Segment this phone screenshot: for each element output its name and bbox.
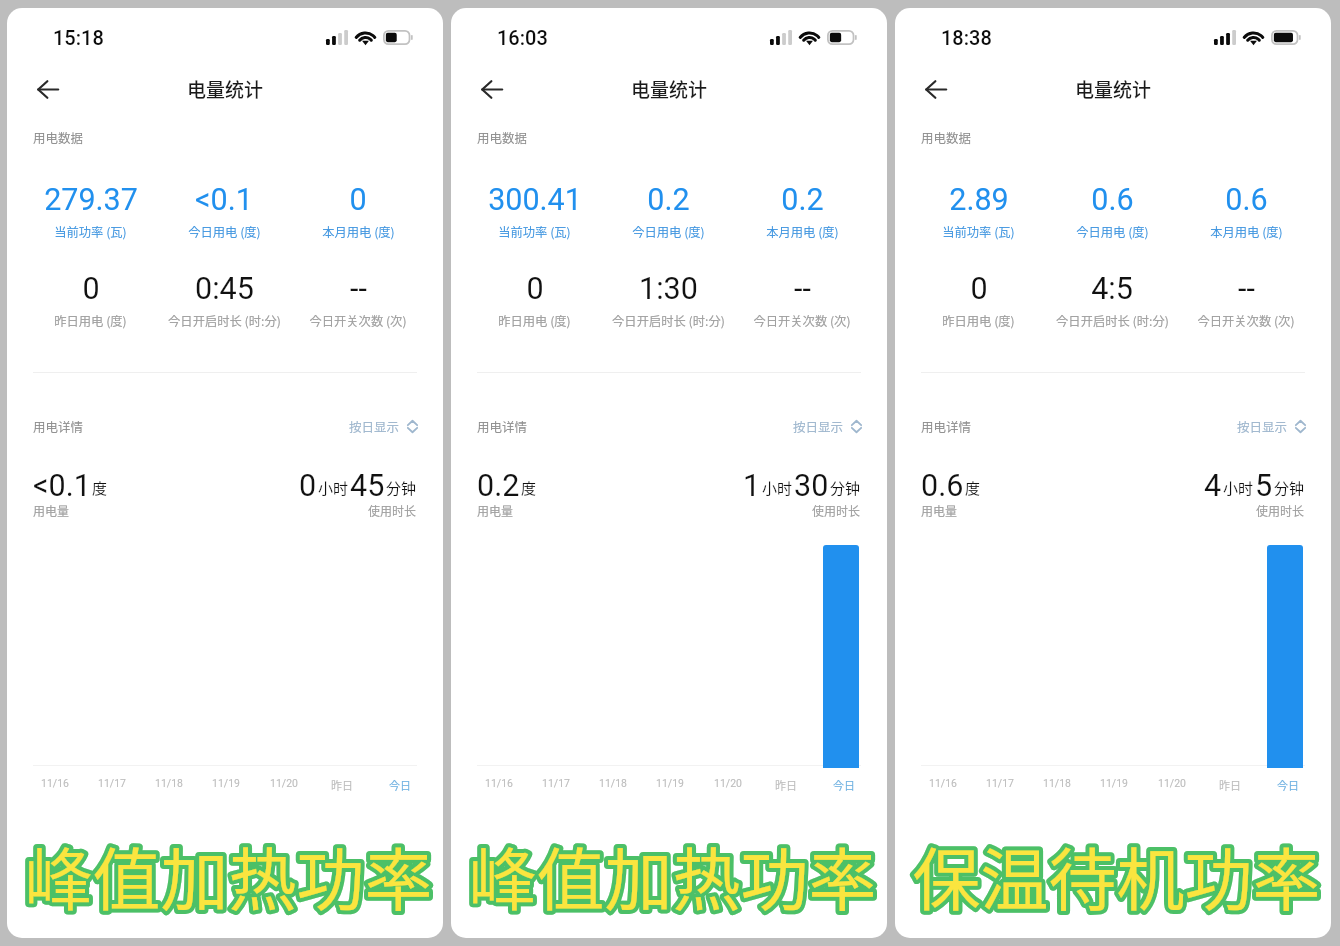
- button[interactable]: --: [1179, 271, 1313, 330]
- button[interactable]: 11/17: [527, 777, 584, 789]
- button[interactable]: --: [291, 271, 425, 330]
- staticText: 16:03: [497, 26, 548, 49]
- staticText: 小时: [318, 477, 349, 499]
- staticText: 0.6: [1091, 182, 1134, 218]
- staticText: 0: [82, 271, 100, 307]
- staticText: 11/16: [929, 777, 957, 789]
- staticText: 使用时长: [368, 502, 417, 519]
- button[interactable]: 11/19: [1085, 777, 1143, 789]
- button[interactable]: 11/16: [914, 777, 971, 789]
- button[interactable]: 今日: [815, 777, 873, 793]
- button[interactable]: 11/20: [255, 777, 313, 789]
- button[interactable]: 0.2: [735, 182, 869, 241]
- button[interactable]: 0: [291, 182, 425, 241]
- button[interactable]: 11/17: [83, 777, 140, 789]
- button[interactable]: 今日: [371, 777, 429, 793]
- button[interactable]: Back: [913, 66, 959, 112]
- button[interactable]: 11/16: [470, 777, 527, 789]
- button[interactable]: 昨日: [1201, 777, 1259, 793]
- staticText: --: [1238, 271, 1255, 307]
- button[interactable]: 0.6: [1179, 182, 1313, 241]
- staticText: 用电量: [921, 502, 958, 519]
- staticText: 按日显示: [349, 417, 400, 435]
- button[interactable]: 4:5: [1045, 271, 1179, 330]
- staticText: 昨日: [775, 777, 797, 793]
- staticText: 用电量: [477, 502, 514, 519]
- staticText: 11/17: [542, 777, 570, 789]
- staticText: 今日: [833, 777, 855, 793]
- staticText: 11/16: [41, 777, 69, 789]
- staticText: 本月用电 (度): [322, 223, 395, 241]
- button[interactable]: 11/20: [1143, 777, 1201, 789]
- button[interactable]: 11/16: [26, 777, 83, 789]
- staticText: 电量统计: [187, 75, 264, 103]
- staticText: 用电详情: [921, 417, 972, 435]
- button[interactable]: 11/20: [699, 777, 757, 789]
- button[interactable]: 0: [912, 271, 1045, 330]
- button[interactable]: 11/18: [584, 777, 641, 789]
- staticText: 本月用电 (度): [1210, 223, 1283, 241]
- button[interactable]: [813, 521, 869, 768]
- other: Mobile signal: [326, 30, 348, 45]
- button[interactable]: 11/19: [641, 777, 699, 789]
- staticText: 昨日: [331, 777, 353, 793]
- button[interactable]: 11/18: [1028, 777, 1085, 789]
- button[interactable]: <0.1: [157, 182, 291, 241]
- button[interactable]: 今日: [1259, 777, 1317, 793]
- button[interactable]: 300.41: [468, 182, 601, 241]
- staticText: 今日开关次数 (次): [1197, 312, 1295, 330]
- button[interactable]: 昨日: [757, 777, 815, 793]
- staticText: 使用时长: [812, 502, 861, 519]
- button[interactable]: 0.2: [601, 182, 735, 241]
- staticText: 当前功率 (瓦): [498, 223, 571, 241]
- button[interactable]: Back: [469, 66, 515, 112]
- button[interactable]: 279.37: [24, 182, 157, 241]
- staticText: 0.6: [921, 468, 964, 504]
- button[interactable]: [1257, 521, 1313, 768]
- button[interactable]: 按日显示: [793, 417, 863, 435]
- button[interactable]: 11/17: [971, 777, 1028, 789]
- staticText: 昨日用电 (度): [498, 312, 571, 330]
- staticText: 当前功率 (瓦): [54, 223, 127, 241]
- button[interactable]: 11/19: [197, 777, 255, 789]
- other: Battery: [827, 30, 858, 45]
- button[interactable]: Back: [25, 66, 71, 112]
- button[interactable]: --: [735, 271, 869, 330]
- staticText: 今日用电 (度): [632, 223, 705, 241]
- staticText: 279.37: [44, 182, 138, 218]
- staticText: 0: [526, 271, 544, 307]
- button[interactable]: 1:30: [601, 271, 735, 330]
- button[interactable]: 0:45: [157, 271, 291, 330]
- button[interactable]: 昨日: [313, 777, 371, 793]
- staticText: <0.1: [33, 468, 91, 504]
- button[interactable]: 0: [24, 271, 157, 330]
- button[interactable]: 按日显示: [349, 417, 419, 435]
- button[interactable]: 2.89: [912, 182, 1045, 241]
- button[interactable]: 0.6: [1045, 182, 1179, 241]
- staticText: 0.2: [477, 468, 520, 504]
- staticText: 5: [1255, 468, 1273, 504]
- staticText: 分钟: [386, 477, 417, 499]
- staticText: 11/20: [270, 777, 298, 789]
- other: Wi-Fi: [356, 30, 375, 45]
- button[interactable]: 按日显示: [1237, 417, 1307, 435]
- staticText: 今日开启时长 (时:分): [168, 312, 281, 330]
- other: Battery: [1271, 30, 1302, 45]
- other: Battery: [383, 30, 414, 45]
- staticText: 度: [92, 477, 108, 499]
- button[interactable]: 0: [468, 271, 601, 330]
- staticText: 分钟: [830, 477, 861, 499]
- button[interactable]: 11/18: [140, 777, 197, 789]
